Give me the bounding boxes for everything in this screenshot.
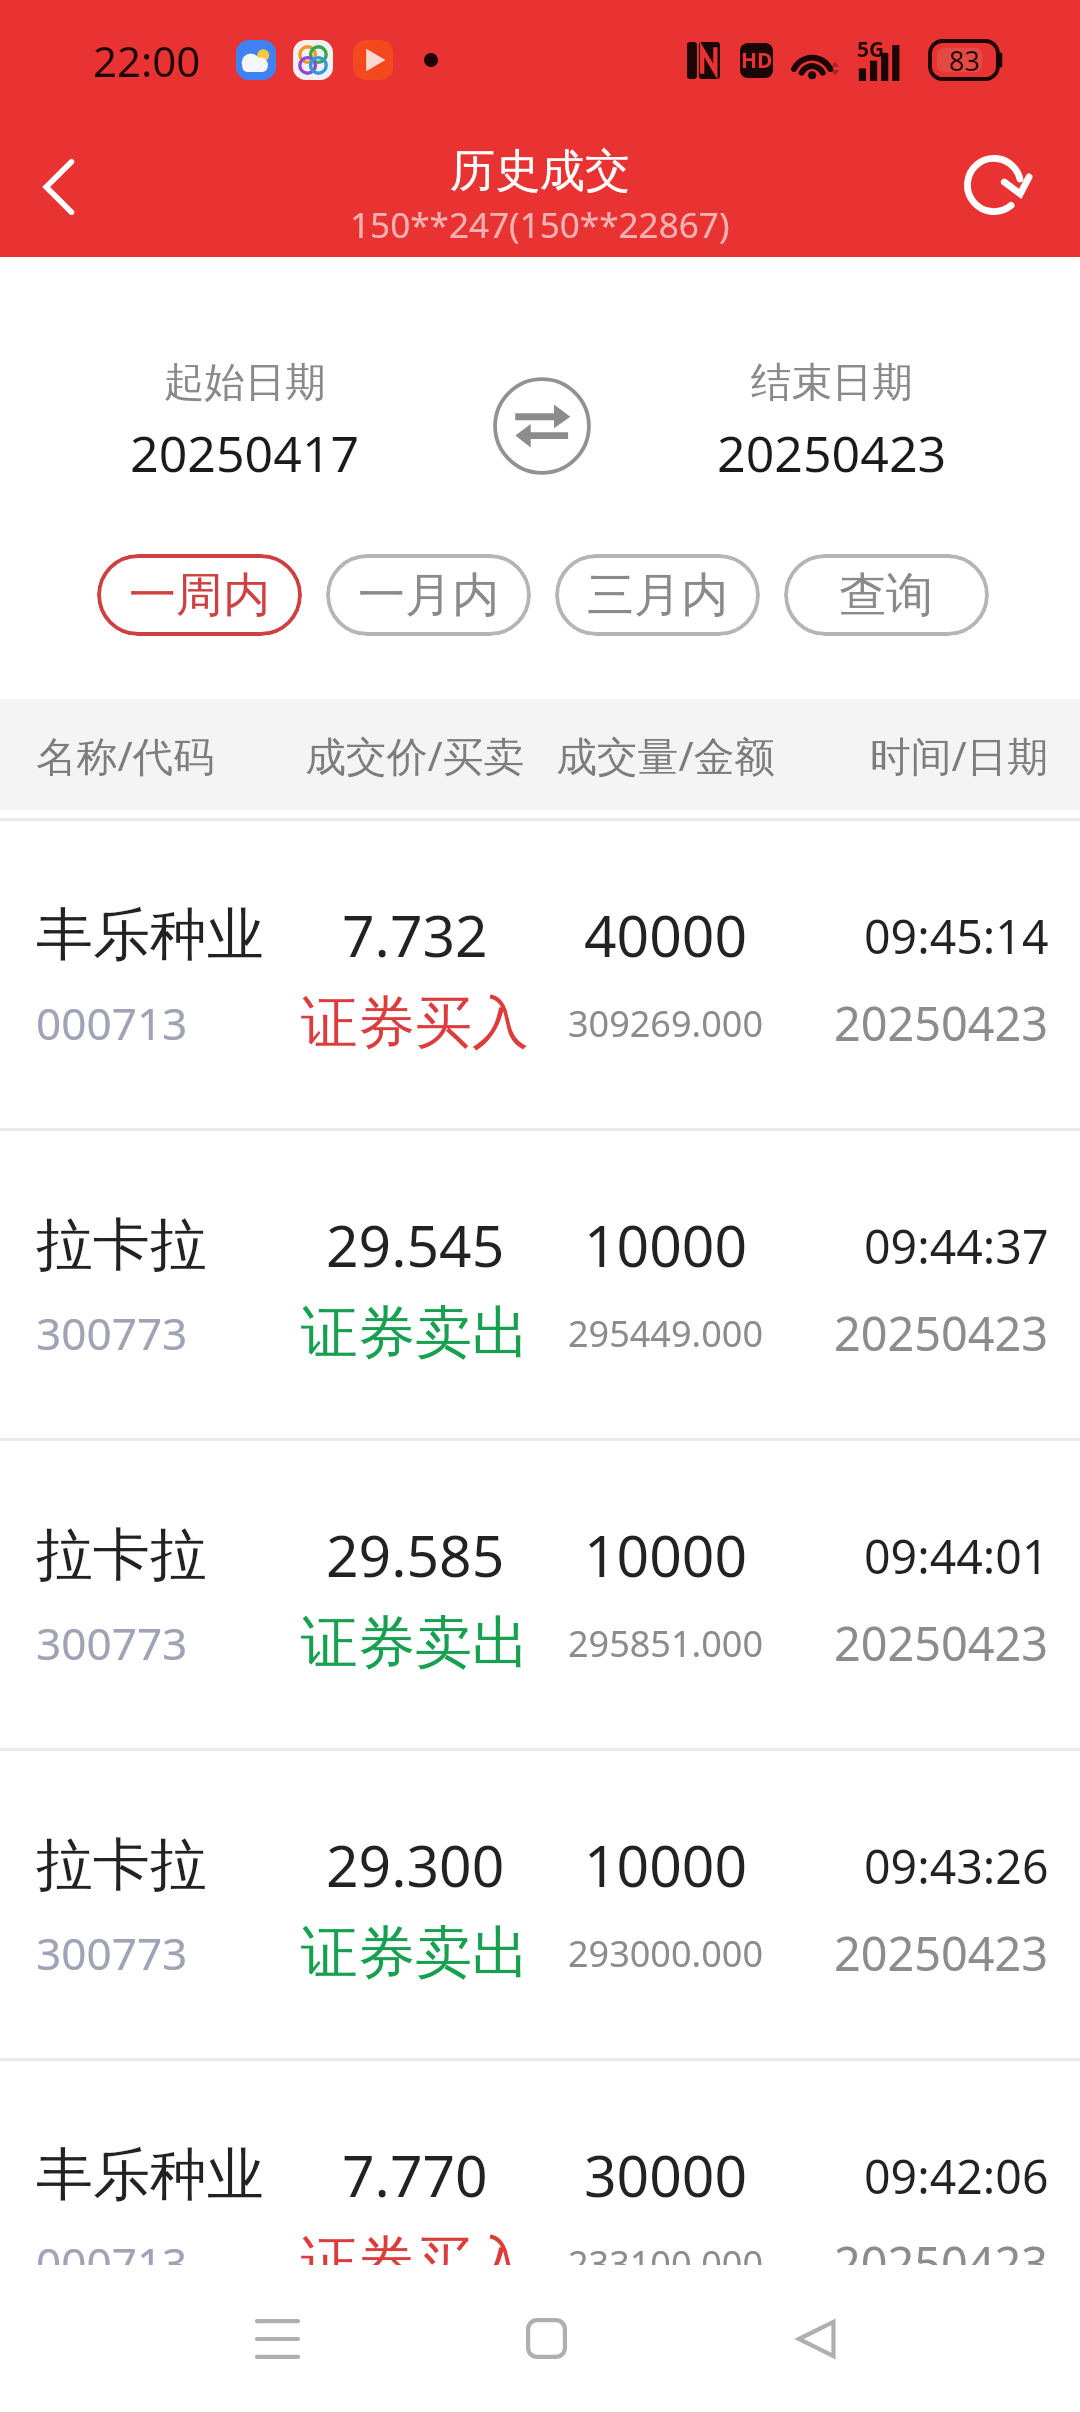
button[interactable]: 拉卡拉 — [0, 1131, 1080, 1438]
staticText: 233100.000 — [568, 2239, 763, 2265]
staticText: 09:45:14 — [864, 904, 1049, 967]
staticText: 09:42:06 — [864, 2144, 1049, 2207]
staticText: 一周内 — [129, 566, 271, 625]
staticText: 时间/日期 — [870, 727, 1049, 783]
button[interactable]: 结束日期 — [584, 257, 1080, 523]
staticText: 20250423 — [717, 418, 947, 486]
button[interactable]: 一周内 — [97, 554, 302, 636]
staticText: 拉卡拉 — [36, 1209, 207, 1281]
staticText: 40000 — [584, 896, 748, 974]
staticText: 成交量/金额 — [556, 727, 776, 783]
staticText: 29.585 — [326, 1516, 505, 1594]
staticText: 证券买入 — [301, 987, 529, 1059]
staticText: 29.300 — [326, 1826, 505, 1904]
staticText: 295449.000 — [568, 1309, 763, 1358]
button[interactable]: 拉卡拉 — [0, 1751, 1080, 2058]
button[interactable]: Back — [0, 120, 116, 257]
button[interactable]: 一月内 — [326, 554, 531, 636]
staticText: 09:44:37 — [864, 1214, 1049, 1277]
button[interactable]: Swap dates — [490, 257, 584, 523]
staticText: 查询 — [839, 566, 934, 625]
button[interactable]: 查询 — [784, 554, 989, 636]
staticText: 10000 — [584, 1826, 748, 1904]
staticText: 30000 — [584, 2136, 748, 2214]
staticText: 20250423 — [834, 1921, 1049, 1985]
staticText: 309269.000 — [568, 999, 763, 1048]
staticText: 证券卖出 — [301, 1297, 529, 1369]
staticText: 10000 — [584, 1516, 748, 1594]
staticText: 000713 — [36, 2233, 188, 2265]
staticText: 09:43:26 — [864, 1834, 1049, 1897]
staticText: 7.770 — [342, 2136, 488, 2214]
staticText: 证券卖出 — [301, 1607, 529, 1679]
staticText: 三月内 — [587, 566, 729, 625]
staticText: 结束日期 — [751, 357, 913, 408]
staticText: 83 — [949, 42, 980, 79]
staticText: 成交价/买卖 — [305, 727, 525, 783]
staticText: 300773 — [36, 1613, 188, 1673]
staticText: 丰乐种业 — [36, 899, 264, 971]
button[interactable]: 起始日期 — [0, 257, 490, 523]
button[interactable]: Refresh — [934, 120, 1080, 257]
staticText: 名称/代码 — [36, 727, 215, 783]
staticText: 300773 — [36, 1303, 188, 1363]
staticText: HD — [741, 46, 773, 75]
staticText: 拉卡拉 — [36, 1519, 207, 1591]
button[interactable]: 三月内 — [555, 554, 760, 636]
staticText: 000713 — [36, 993, 188, 1053]
button[interactable]: Back — [756, 2265, 875, 2412]
button[interactable]: 拉卡拉 — [0, 1441, 1080, 1748]
staticText: 丰乐种业 — [36, 2139, 264, 2211]
button[interactable]: Recents — [218, 2265, 337, 2412]
staticText: 20250423 — [834, 1301, 1049, 1365]
staticText: 5G — [857, 35, 885, 64]
staticText: 起始日期 — [164, 357, 326, 408]
staticText: 历史成交 — [450, 143, 630, 200]
staticText: 一月内 — [358, 566, 500, 625]
staticText: 20250423 — [834, 1611, 1049, 1675]
button[interactable]: 丰乐种业 — [0, 2061, 1080, 2265]
staticText: 300773 — [36, 1923, 188, 1983]
staticText: 10000 — [584, 1206, 748, 1284]
button[interactable]: Home — [487, 2265, 606, 2412]
staticText: 22:00 — [93, 32, 201, 89]
staticText: 20250417 — [130, 418, 360, 486]
staticText: 证券买入 — [301, 2227, 529, 2265]
staticText: 20250423 — [834, 2231, 1049, 2265]
staticText: 证券卖出 — [301, 1917, 529, 1989]
staticText: 29.545 — [326, 1206, 505, 1284]
staticText: 09:44:01 — [864, 1524, 1049, 1587]
staticText: 295851.000 — [568, 1619, 763, 1668]
staticText: 150**247(150**22867) — [350, 200, 730, 248]
staticText: 20250423 — [834, 991, 1049, 1055]
staticText: 7.732 — [342, 896, 488, 974]
staticText: 293000.000 — [568, 1929, 763, 1978]
staticText: 拉卡拉 — [36, 1829, 207, 1901]
button[interactable]: 丰乐种业 — [0, 821, 1080, 1128]
